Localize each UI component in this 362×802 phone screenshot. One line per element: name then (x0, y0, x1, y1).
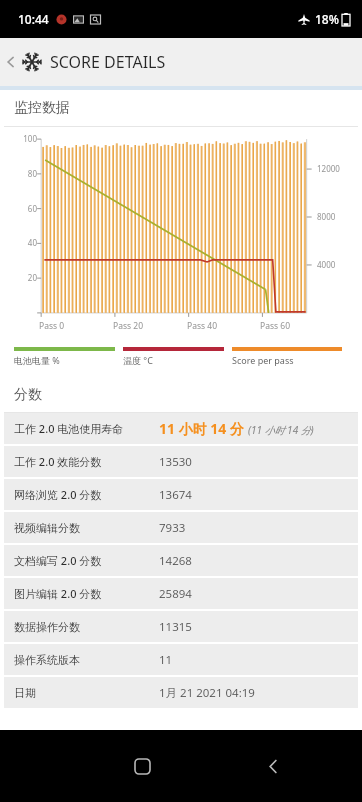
staticText: Score per pass (232, 354, 294, 366)
button[interactable]: 操作系统版本 (4, 644, 358, 675)
button[interactable]: 网络浏览 2.0 分数 (4, 479, 358, 510)
staticText: 13530 (159, 454, 192, 470)
button[interactable]: 工作 2.0 效能分数 (4, 446, 358, 477)
staticText: 工作 2.0 电池使用寿命 (14, 421, 159, 436)
staticText: 20 (8, 272, 37, 283)
staticText: 8000 (317, 211, 356, 222)
staticText: 10:44 (18, 11, 49, 27)
staticText: 18% (315, 11, 339, 27)
button[interactable]: 图片编辑 2.0 分数 (4, 578, 358, 609)
staticText: 11 (159, 652, 173, 668)
staticText: 7933 (159, 520, 186, 536)
staticText: 分数 (14, 386, 42, 404)
staticText: 100 (8, 133, 37, 144)
button[interactable]: 数据操作分数 (4, 611, 358, 642)
staticText: 温度 °C (123, 354, 153, 366)
staticText: 13674 (159, 487, 192, 503)
staticText: 视频编辑分数 (14, 521, 159, 535)
staticText: (11 小时 14 分) (248, 423, 314, 437)
staticText: Pass 40 (187, 320, 217, 332)
button[interactable]: 视频编辑分数 (4, 512, 358, 543)
staticText: 网络浏览 2.0 分数 (14, 487, 159, 502)
staticText: 文档编写 2.0 分数 (14, 553, 159, 568)
staticText: 4000 (317, 259, 356, 270)
staticText: 日期 (14, 686, 159, 700)
button[interactable]: Back (249, 742, 297, 790)
staticText: Pass 60 (260, 320, 290, 332)
button[interactable]: 日期 (4, 677, 358, 708)
staticText: 25894 (159, 586, 192, 602)
button[interactable]: 工作 2.0 电池使用寿命 (4, 413, 358, 444)
staticText: 1月 21 2021 04:19 (159, 685, 255, 701)
staticText: 电池电量 % (14, 354, 60, 366)
staticText: 11315 (159, 619, 192, 635)
staticText: 图片编辑 2.0 分数 (14, 586, 159, 601)
staticText: 监控数据 (14, 99, 70, 117)
staticText: 操作系统版本 (14, 653, 159, 667)
staticText: 40 (8, 237, 37, 248)
staticText: 12000 (317, 163, 356, 174)
button[interactable]: Back (0, 38, 22, 86)
staticText: 11 小时 14 分 (159, 419, 244, 438)
staticText: 数据操作分数 (14, 620, 159, 634)
staticText: 工作 2.0 效能分数 (14, 454, 159, 469)
staticText: 80 (8, 168, 37, 179)
staticText: SCORE DETAILS (50, 51, 166, 73)
button[interactable]: Home (118, 742, 166, 790)
staticText: 60 (8, 203, 37, 214)
button[interactable]: 文档编写 2.0 分数 (4, 545, 358, 576)
staticText: Pass 0 (39, 320, 65, 332)
staticText: 14268 (159, 553, 192, 569)
staticText: Pass 20 (113, 320, 143, 332)
